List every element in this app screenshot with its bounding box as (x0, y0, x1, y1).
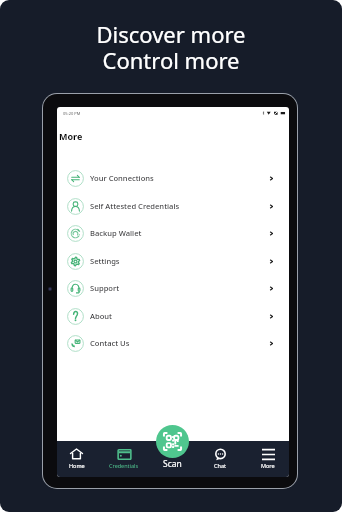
button[interactable]: Backup Wallet (57, 219, 289, 247)
staticText: Settings (90, 256, 120, 266)
button[interactable]: Your Connections (57, 164, 289, 192)
staticText: Self Attested Credentials (90, 201, 180, 211)
button[interactable]: More (244, 441, 289, 477)
button[interactable]: Scan (148, 441, 196, 477)
staticText: Contact Us (90, 338, 130, 348)
staticText: 05:20 PM (63, 111, 81, 116)
button[interactable]: Credentials (100, 441, 148, 477)
staticText: Home (69, 462, 85, 469)
staticText: Discover more (96, 19, 246, 49)
button[interactable]: Settings (57, 247, 289, 275)
button[interactable]: Chat (196, 441, 244, 477)
staticText: Credentials (109, 462, 139, 469)
button[interactable]: Home (57, 441, 100, 477)
staticText: More (261, 462, 275, 469)
staticText: Your Connections (90, 173, 154, 183)
staticText: Chat (214, 462, 226, 469)
staticText: Support (90, 283, 120, 293)
staticText: About (90, 311, 112, 321)
button[interactable]: Self Attested Credentials (57, 192, 289, 220)
staticText: More (59, 130, 83, 142)
button[interactable]: Contact Us (57, 329, 289, 357)
staticText: Backup Wallet (90, 228, 142, 238)
button[interactable]: Scan (156, 425, 189, 458)
button[interactable]: About (57, 302, 289, 330)
button[interactable]: Support (57, 274, 289, 302)
staticText: Control more (102, 45, 240, 75)
staticText: Scan (163, 458, 182, 470)
